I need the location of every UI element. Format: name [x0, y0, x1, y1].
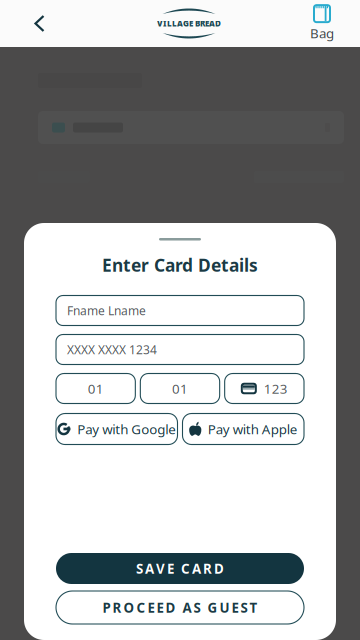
staticText: Fname Lname [67, 302, 146, 318]
staticText: Pay with Google [77, 420, 176, 438]
staticText: S A V E C A R D [136, 560, 224, 577]
staticText: Pay with Apple [208, 420, 298, 438]
button[interactable]: Back [34, 0, 78, 47]
staticText: XXXX XXXX 1234 [67, 341, 157, 357]
staticText: 01 [88, 380, 104, 397]
staticText: VILLAGE BREAD [157, 18, 221, 29]
staticText: Bag [310, 24, 334, 42]
button[interactable]: Pay with Google [56, 413, 177, 444]
staticText: P R O C E E D A S G U E S T [102, 599, 257, 616]
staticText: 123 [264, 380, 288, 397]
button[interactable]: S A V E C A R D [56, 553, 304, 584]
staticText: 01 [172, 380, 188, 397]
button[interactable]: Bag [300, 0, 344, 47]
button[interactable]: P R O C E E D A S G U E S T [56, 591, 304, 624]
staticText: Enter Card Details [102, 253, 258, 276]
button[interactable]: Pay with Apple [182, 413, 304, 444]
